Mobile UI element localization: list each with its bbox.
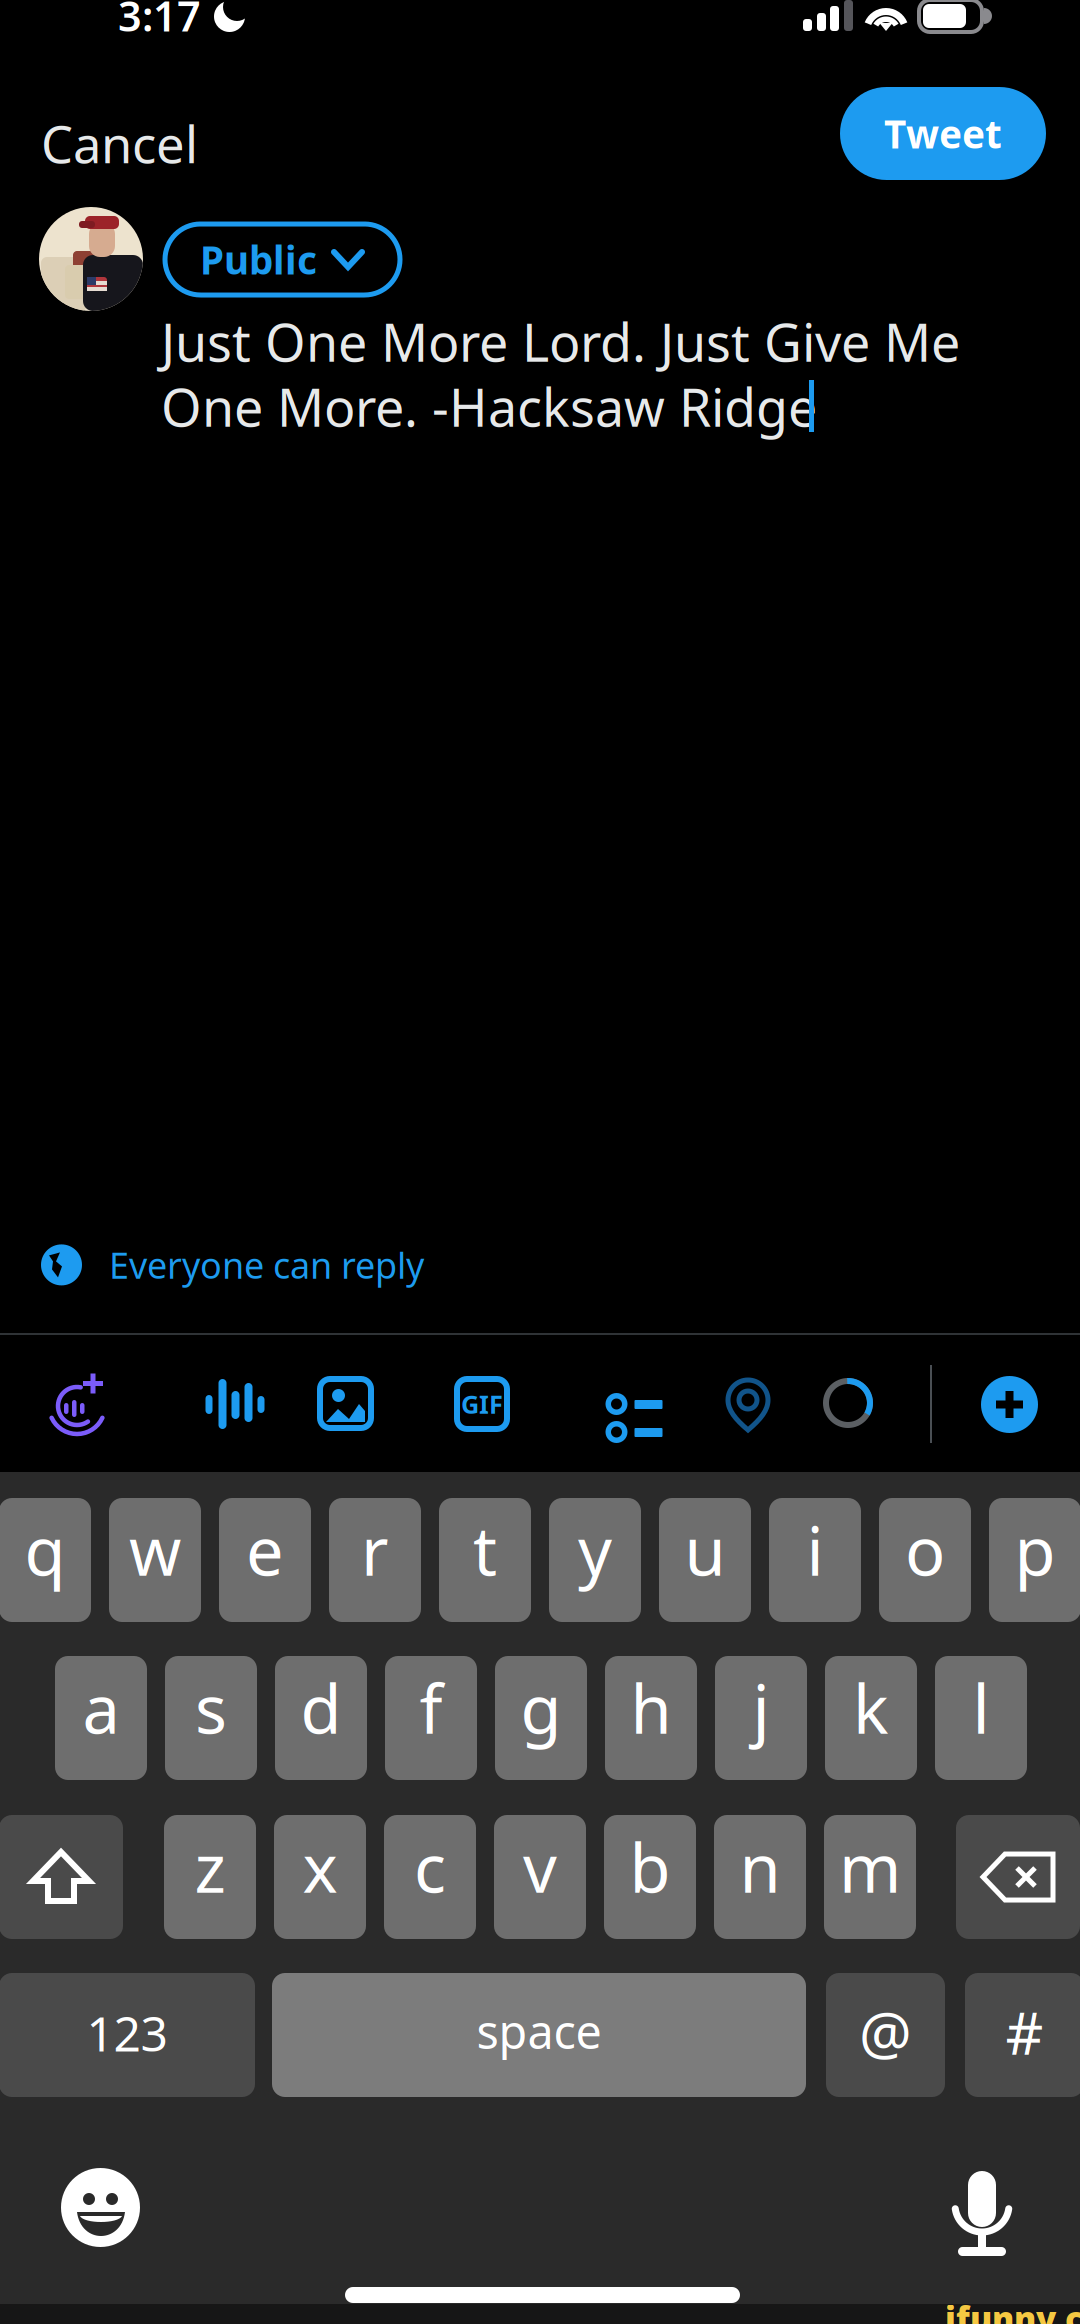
button[interactable]: u	[659, 1498, 751, 1622]
staticText: #	[1005, 1993, 1043, 2071]
staticText: i	[806, 1506, 823, 1594]
button[interactable]: Profile photo	[39, 207, 143, 311]
button[interactable]: Voice	[180, 1379, 239, 1429]
button[interactable]: i	[769, 1498, 861, 1622]
staticText: 3:17	[118, 0, 201, 43]
button[interactable]: a	[55, 1656, 147, 1780]
staticText: y	[578, 1506, 612, 1594]
button[interactable]: g	[495, 1656, 587, 1780]
staticText: s	[195, 1664, 227, 1752]
button[interactable]: x	[274, 1815, 366, 1939]
button[interactable]: q	[0, 1498, 91, 1622]
button[interactable]: s	[165, 1656, 257, 1780]
button[interactable]: p	[989, 1498, 1080, 1622]
staticText: g	[520, 1664, 561, 1752]
staticText: o	[905, 1506, 945, 1594]
button[interactable]: 123	[0, 1973, 255, 2097]
staticText: d	[300, 1664, 341, 1752]
staticText: q	[24, 1506, 65, 1594]
button[interactable]: y	[549, 1498, 641, 1622]
button[interactable]: Dictate	[948, 2162, 1016, 2248]
button[interactable]: d	[275, 1656, 367, 1780]
button[interactable]: space	[272, 1973, 806, 2097]
staticText: l	[972, 1664, 989, 1752]
button[interactable]: Photos	[320, 1379, 371, 1428]
button[interactable]: w	[109, 1498, 201, 1622]
button[interactable]: Public	[165, 224, 400, 295]
button[interactable]: h	[605, 1656, 697, 1780]
button[interactable]: Cancel	[41, 110, 198, 177]
staticText: GIF	[461, 1387, 503, 1421]
button[interactable]: Tweet	[840, 87, 1046, 180]
button[interactable]: Add another tweet	[981, 1376, 1038, 1433]
staticText: e	[246, 1506, 284, 1594]
button[interactable]: f	[385, 1656, 477, 1780]
button[interactable]: Everyone can reply	[41, 1241, 424, 1289]
staticText: @	[859, 1993, 912, 2071]
staticText: k	[853, 1664, 889, 1752]
staticText: x	[302, 1823, 337, 1911]
button[interactable]: Location	[725, 1376, 772, 1432]
button[interactable]: GIF	[457, 1379, 507, 1429]
staticText: Cancel	[41, 110, 198, 177]
staticText: j	[752, 1664, 769, 1752]
staticText: Public	[200, 234, 317, 285]
staticText: r	[361, 1506, 389, 1594]
button[interactable]: o	[879, 1498, 971, 1622]
staticText: ifunny.co	[945, 2296, 1080, 2324]
staticText: c	[414, 1823, 446, 1911]
button[interactable]: n	[714, 1815, 806, 1939]
button[interactable]: Grok	[41, 1371, 103, 1433]
button[interactable]: j	[715, 1656, 807, 1780]
button[interactable]: c	[384, 1815, 476, 1939]
button[interactable]: k	[825, 1656, 917, 1780]
staticText: Just One More Lord. Just Give Me One Mor…	[161, 307, 960, 441]
staticText: n	[739, 1823, 780, 1911]
button[interactable]: @	[826, 1973, 945, 2097]
staticText: Everyone can reply	[109, 1241, 424, 1289]
button[interactable]: e	[219, 1498, 311, 1622]
staticText: p	[1014, 1506, 1055, 1594]
button[interactable]: m	[824, 1815, 916, 1939]
staticText: w	[129, 1506, 181, 1594]
staticText: m	[839, 1823, 901, 1911]
staticText: b	[629, 1823, 670, 1911]
staticText: h	[630, 1664, 671, 1752]
staticText: z	[194, 1823, 225, 1911]
staticText: a	[82, 1664, 119, 1752]
staticText: Tweet	[884, 108, 1002, 159]
button[interactable]: Character count	[823, 1378, 873, 1428]
staticText: t	[473, 1506, 497, 1594]
button[interactable]: Emoji keyboard	[61, 2168, 140, 2247]
button[interactable]: z	[164, 1815, 256, 1939]
staticText: f	[419, 1664, 442, 1752]
button[interactable]: l	[935, 1656, 1027, 1780]
button[interactable]: v	[494, 1815, 586, 1939]
button[interactable]: #	[965, 1973, 1080, 2097]
staticText: 123	[86, 2001, 167, 2065]
staticText: v	[523, 1823, 557, 1911]
button[interactable]: Shift	[0, 1815, 123, 1939]
button[interactable]: r	[329, 1498, 421, 1622]
button[interactable]: Poll	[591, 1379, 648, 1429]
staticText: u	[684, 1506, 725, 1594]
staticText: space	[476, 2000, 601, 2062]
button[interactable]: b	[604, 1815, 696, 1939]
button[interactable]: t	[439, 1498, 531, 1622]
button[interactable]: Delete	[956, 1815, 1080, 1939]
